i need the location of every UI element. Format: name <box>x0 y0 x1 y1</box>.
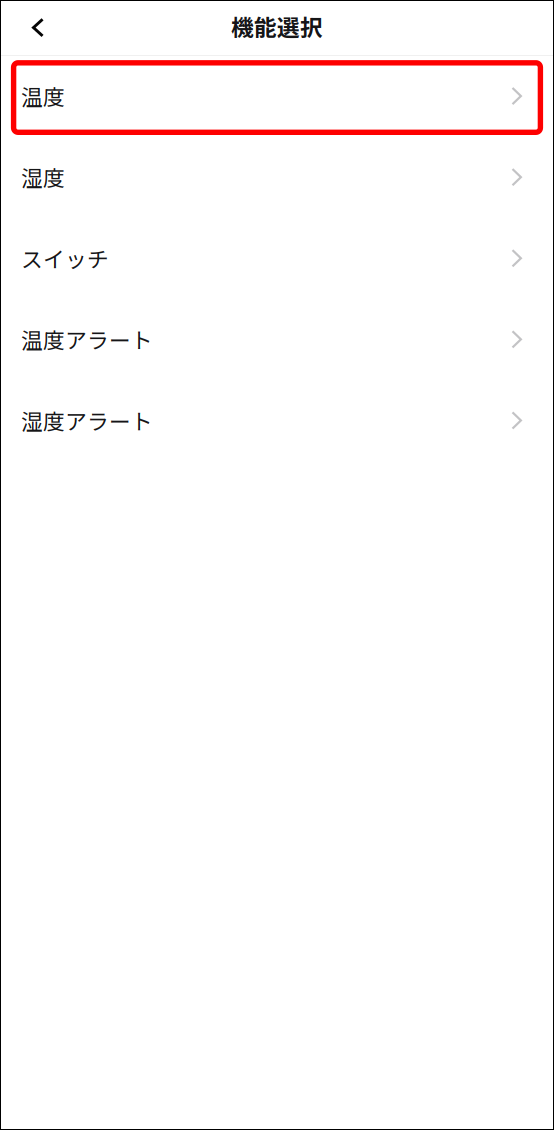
staticText: 機能選択 <box>231 10 323 42</box>
staticText: 湿度 <box>21 161 65 193</box>
staticText: 温度 <box>21 80 65 111</box>
button[interactable]: 温度アラート <box>0 298 554 380</box>
button[interactable]: スイッチ <box>0 217 554 298</box>
button[interactable]: Back <box>16 6 60 50</box>
button[interactable]: 湿度アラート <box>0 380 554 461</box>
staticText: 温度アラート <box>21 323 153 355</box>
button[interactable]: 湿度 <box>0 136 554 217</box>
button[interactable]: 温度 <box>0 55 554 136</box>
staticText: 湿度アラート <box>21 404 153 436</box>
staticText: スイッチ <box>21 242 109 274</box>
